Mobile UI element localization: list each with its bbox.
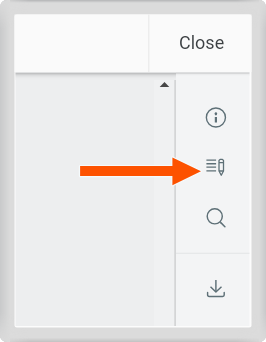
button[interactable]: Annotate <box>176 142 250 192</box>
staticText: Close <box>179 32 225 53</box>
button[interactable]: Search <box>176 192 250 243</box>
button[interactable]: Document info <box>176 93 250 142</box>
button[interactable]: Download <box>176 264 250 313</box>
button[interactable]: Close <box>151 15 252 72</box>
button[interactable]: Scroll up <box>154 76 174 94</box>
